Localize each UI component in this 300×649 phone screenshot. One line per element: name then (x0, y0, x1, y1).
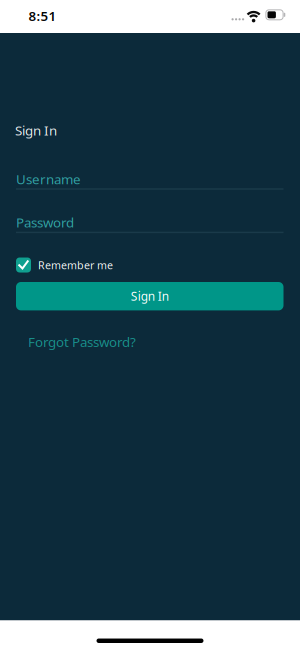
staticText: Remember me (38, 258, 113, 272)
button[interactable]: Password (16, 213, 283, 233)
staticText: 8:51 (28, 7, 56, 25)
staticText: Sign In (15, 121, 57, 139)
button[interactable]: Sign In (16, 282, 283, 310)
staticText: Sign In (131, 288, 169, 304)
staticText: Username (16, 170, 81, 188)
button[interactable]: Username (16, 170, 283, 190)
button[interactable]: Remember me (16, 257, 113, 272)
staticText: Password (16, 213, 74, 231)
staticText: Forgot Password? (28, 333, 136, 351)
button[interactable]: Forgot Password? (28, 333, 136, 351)
